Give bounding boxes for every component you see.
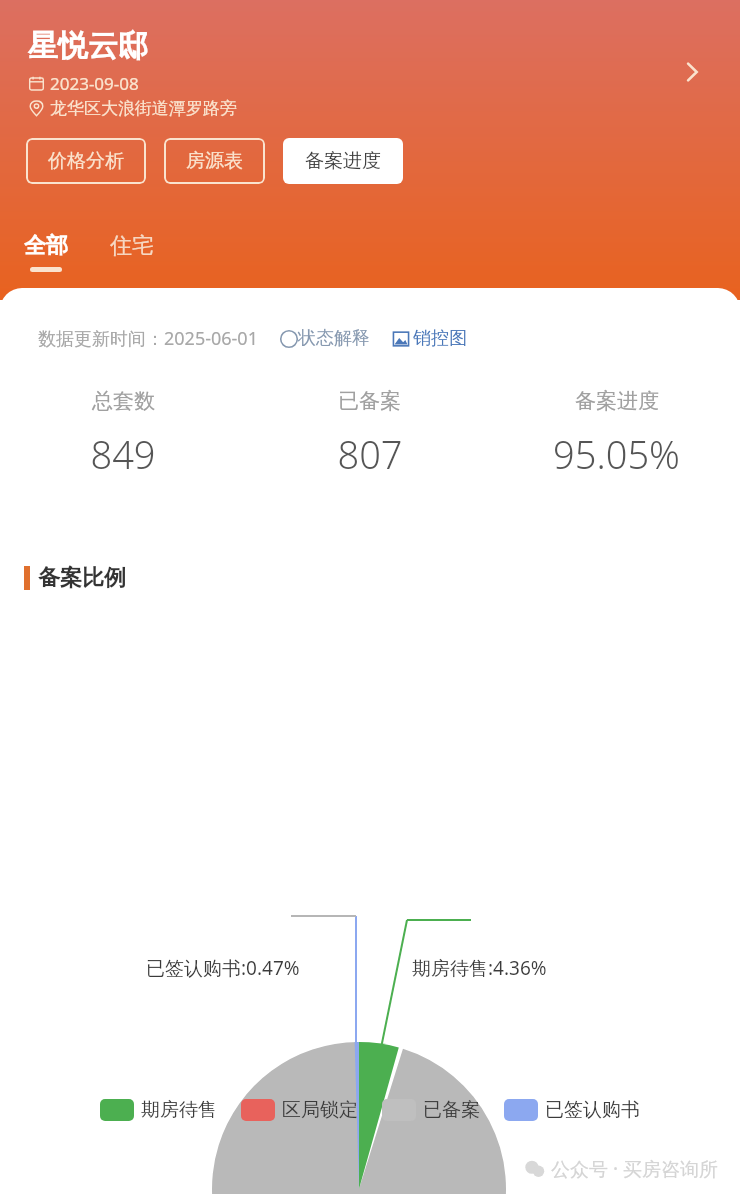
button[interactable]: 房源表: [164, 138, 265, 184]
staticText: 区局锁定: [282, 1098, 358, 1122]
staticText: 备案进度: [305, 149, 381, 173]
button[interactable]: 销控图: [392, 327, 467, 350]
staticText: 数据更新时间：2025-06-01: [38, 326, 258, 351]
staticText: 已签认购书: [545, 1098, 640, 1122]
button[interactable]: 期房待售: [100, 1098, 217, 1122]
staticText: 备案比例: [38, 564, 126, 592]
staticText: 全部: [24, 232, 68, 260]
button[interactable]: 住宅: [102, 232, 162, 260]
button[interactable]: 已签认购书: [504, 1098, 640, 1122]
staticText: 已备案: [338, 388, 401, 414]
staticText: 已签认购书:0.47%: [146, 955, 300, 981]
staticText: 龙华区大浪街道潭罗路旁: [50, 98, 237, 119]
button[interactable]: 总套数: [0, 388, 246, 480]
staticText: 备案进度: [575, 388, 659, 414]
staticText: 总套数: [92, 388, 155, 414]
staticText: 房源表: [186, 149, 243, 173]
staticText: 价格分析: [48, 149, 124, 173]
button[interactable]: 已备案: [382, 1098, 480, 1122]
staticText: 星悦云邸: [28, 27, 148, 65]
staticText: 状态解释: [298, 327, 370, 350]
button[interactable]: 查看详情: [672, 52, 712, 92]
button[interactable]: 备案进度: [493, 388, 740, 480]
button[interactable]: 备案进度: [283, 138, 403, 184]
button[interactable]: 价格分析: [26, 138, 146, 184]
staticText: 销控图: [413, 327, 467, 350]
staticText: 849: [90, 428, 156, 480]
button[interactable]: 区局锁定: [241, 1098, 358, 1122]
staticText: 95.05%: [553, 428, 680, 480]
staticText: 已备案: [423, 1098, 480, 1122]
button[interactable]: 状态解释: [280, 327, 370, 350]
staticText: 2023-09-08: [50, 72, 139, 95]
staticText: 期房待售:4.36%: [412, 955, 547, 981]
button[interactable]: 全部: [16, 232, 76, 272]
staticText: 807: [337, 428, 403, 480]
staticText: 住宅: [110, 232, 154, 260]
button[interactable]: 已备案: [246, 388, 493, 480]
staticText: 公众号 · 买房咨询所: [551, 1156, 718, 1182]
staticText: 期房待售: [141, 1098, 217, 1122]
